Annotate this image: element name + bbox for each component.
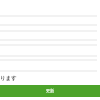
button[interactable]: 更新 bbox=[0, 85, 100, 97]
staticText: ります bbox=[0, 75, 17, 82]
staticText: 更新 bbox=[46, 88, 54, 93]
